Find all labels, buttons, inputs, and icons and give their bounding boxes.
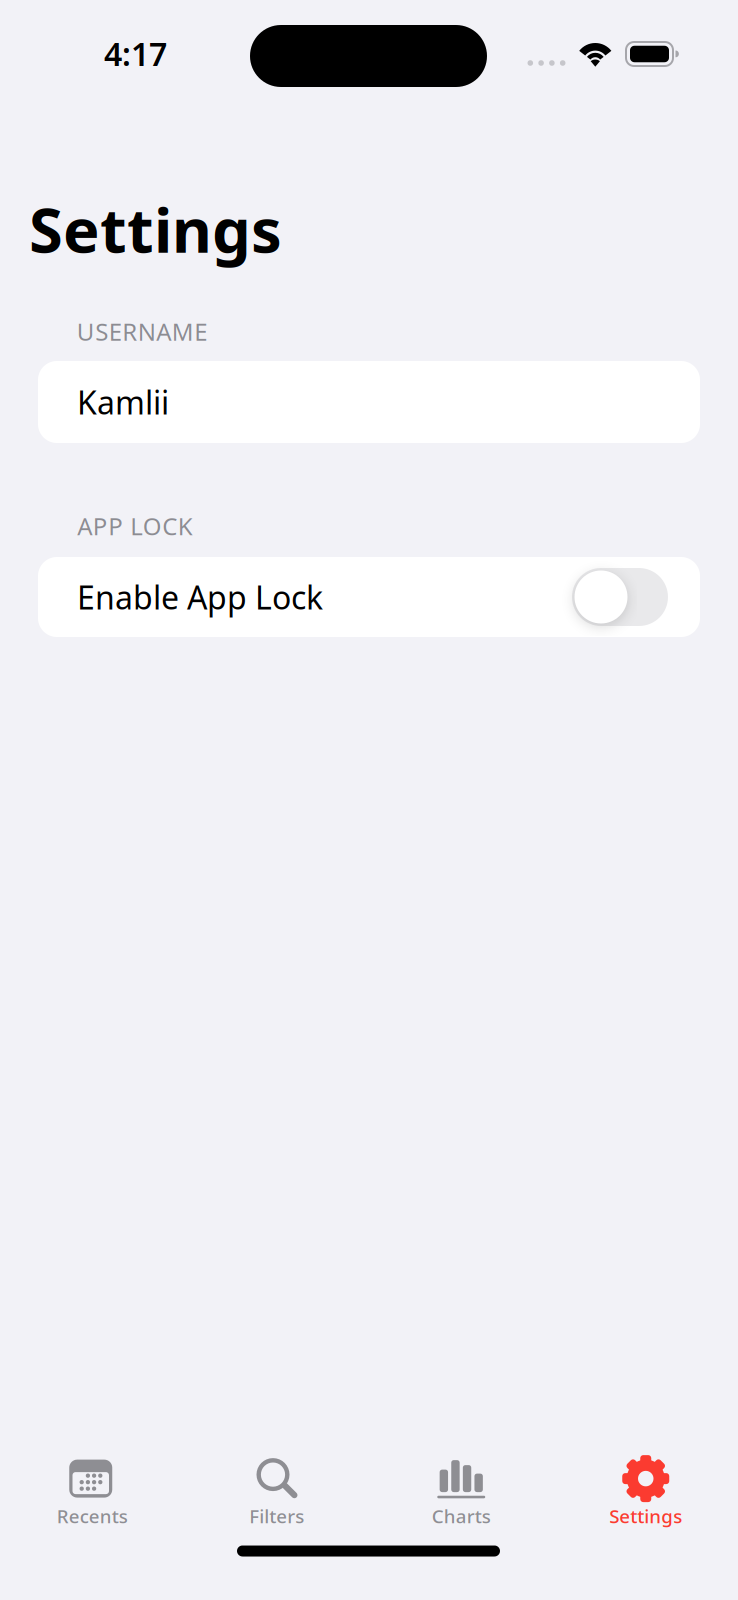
staticText: Settings: [609, 1504, 682, 1528]
button[interactable]: Kamlii: [38, 361, 700, 443]
staticText: Settings: [29, 188, 282, 270]
staticText: Kamlii: [77, 381, 169, 423]
staticText: Charts: [432, 1504, 491, 1528]
staticText: Filters: [249, 1504, 304, 1528]
staticText: APP LOCK: [77, 510, 193, 542]
button[interactable]: Charts: [369, 1445, 553, 1537]
button[interactable]: Settings: [553, 1445, 738, 1537]
staticText: Recents: [57, 1504, 128, 1528]
button[interactable]: Recents: [0, 1445, 184, 1537]
staticText: 4:17: [104, 32, 167, 75]
button[interactable]: Filters: [184, 1445, 369, 1537]
button[interactable]: Enable App Lock: [572, 568, 668, 626]
staticText: Enable App Lock: [77, 576, 323, 618]
staticText: USERNAME: [77, 316, 207, 347]
